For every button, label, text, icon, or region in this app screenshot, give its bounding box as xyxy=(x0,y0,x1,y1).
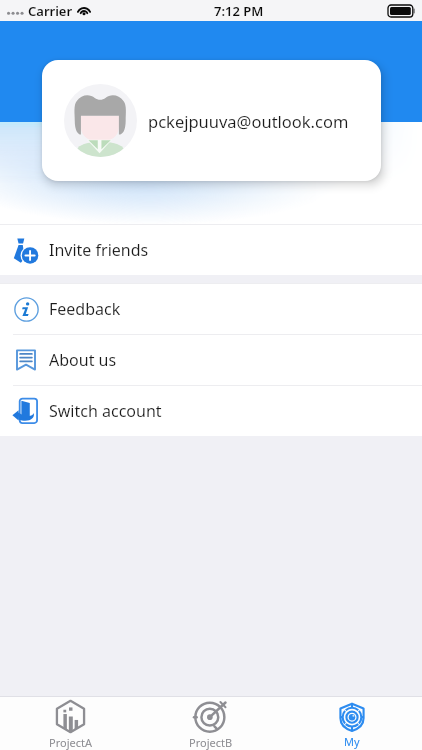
button[interactable]: Feedback xyxy=(0,284,422,334)
staticText: Carrier xyxy=(28,2,73,20)
button[interactable]: About us xyxy=(0,335,422,385)
button[interactable]: Invite friends xyxy=(0,225,422,275)
button[interactable]: My xyxy=(281,697,422,750)
staticText: ProjectA xyxy=(49,735,92,750)
staticText: ProjectB xyxy=(189,735,233,750)
button[interactable]: Switch account xyxy=(0,386,422,436)
staticText: Invite friends xyxy=(49,239,149,261)
button[interactable]: ProjectB xyxy=(140,697,281,750)
staticText: About us xyxy=(49,349,117,371)
staticText: Feedback xyxy=(49,298,121,320)
staticText: My xyxy=(344,734,360,749)
staticText: Switch account xyxy=(49,400,162,422)
staticText: 7:12 PM xyxy=(214,2,264,20)
staticText: pckejpuuva@outlook.com xyxy=(148,110,349,132)
button[interactable]: pckejpuuva@outlook.com xyxy=(42,60,381,181)
button[interactable]: ProjectA xyxy=(0,697,140,750)
